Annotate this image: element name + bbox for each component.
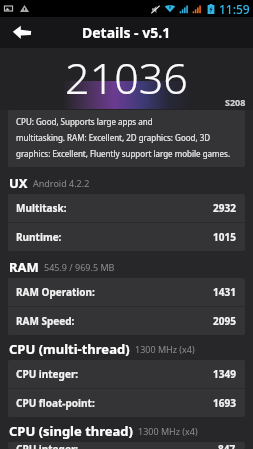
staticText: Runtime: (16, 230, 62, 244)
staticText: RAM (9, 258, 39, 276)
staticText: CPU: Good, Supports large apps and (16, 116, 153, 127)
staticText: 1300 MHz (x4) (138, 425, 198, 437)
button[interactable]: RAM Operation: (8, 278, 245, 306)
button[interactable]: CPU integer: (8, 360, 245, 388)
staticText: RAM Operation: (16, 285, 95, 299)
staticText: 1300 MHz (x4) (135, 343, 195, 355)
staticText: 11:59 (219, 1, 250, 17)
button[interactable]: Multitask: (8, 194, 245, 222)
staticText: Android 4.2.2 (33, 177, 90, 189)
button[interactable]: Runtime: (8, 223, 245, 251)
staticText: CPU (multi-thread) (9, 340, 130, 358)
staticText: 1015 (213, 230, 236, 244)
staticText: 847 (218, 442, 236, 449)
staticText: Multitask: (16, 201, 67, 215)
button[interactable]: Back (0, 17, 44, 48)
staticText: 1349 (213, 367, 236, 381)
staticText: 2932 (213, 201, 236, 215)
staticText: 21036 (65, 48, 188, 106)
staticText: RAM Speed: (16, 314, 75, 328)
staticText: CPU integer: (16, 367, 79, 381)
staticText: CPU (single thread) (9, 422, 133, 440)
staticText: CPU integer: (16, 442, 79, 449)
button[interactable]: CPU integer: (8, 442, 245, 449)
button[interactable]: RAM Speed: (8, 307, 245, 335)
staticText: 2095 (213, 314, 236, 328)
staticText: 1431 (213, 285, 236, 299)
staticText: S208 (225, 96, 246, 108)
staticText: 1693 (213, 396, 236, 410)
button[interactable]: CPU float-point: (8, 389, 245, 417)
staticText: CPU float-point: (16, 396, 95, 410)
staticText: graphics: Excellent, Fluently support la… (16, 148, 231, 159)
staticText: UX (9, 174, 28, 192)
staticText: Details - v5.1 (82, 23, 171, 42)
staticText: 545.9 / 969.5 MB (44, 261, 115, 273)
staticText: multitasking. RAM: Excellent, 2D graphic… (16, 132, 211, 143)
